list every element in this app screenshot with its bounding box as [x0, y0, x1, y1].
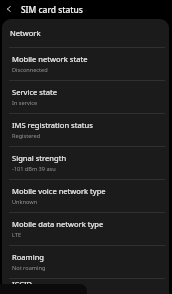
button[interactable]: Service state	[2, 80, 169, 113]
button[interactable]: Network	[2, 19, 169, 47]
staticText: Mobile network state	[12, 54, 88, 64]
staticText: Mobile data network type	[12, 219, 104, 229]
button[interactable]: Signal strength	[2, 146, 169, 179]
button[interactable]: Mobile voice network type	[2, 179, 169, 212]
staticText: Mobile voice network type	[12, 186, 106, 196]
button[interactable]: Mobile data network type	[2, 212, 169, 245]
staticText: Not roaming	[12, 264, 46, 272]
staticText: ICCID	[12, 279, 33, 289]
button[interactable]: Roaming	[2, 245, 169, 278]
button[interactable]: ICCID	[2, 278, 169, 294]
staticText: Network	[10, 28, 41, 38]
staticText: Service state	[12, 87, 57, 97]
button[interactable]: Mobile network state	[2, 47, 169, 80]
staticText: Roaming	[12, 252, 44, 262]
staticText: Signal strength	[12, 153, 67, 163]
staticText: Registered	[12, 132, 41, 140]
staticText: IMS registration status	[12, 120, 93, 130]
staticText: In service	[12, 99, 38, 107]
button[interactable]: IMS registration status	[2, 113, 169, 146]
staticText: Unknown	[12, 198, 38, 206]
staticText: SIM card status	[21, 4, 83, 15]
staticText: -101 dBm 39 asu	[12, 165, 56, 173]
button[interactable]: Back	[0, 0, 18, 18]
staticText: Disconnected	[12, 66, 48, 74]
staticText: LTE	[12, 231, 22, 239]
